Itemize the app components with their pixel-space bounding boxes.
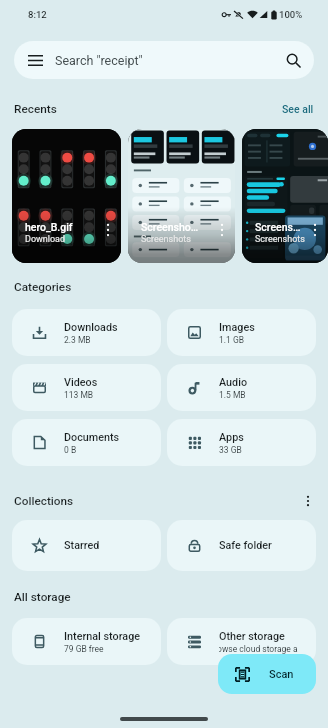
- other: More options: [217, 223, 227, 237]
- button[interactable]: hero_B.gif: [12, 129, 121, 263]
- staticText: Images: [219, 321, 255, 334]
- button[interactable]: Screensho…: [128, 129, 235, 263]
- staticText: Screenshots: [255, 234, 305, 245]
- staticText: All storage: [14, 590, 71, 604]
- button[interactable]: Open navigation menu: [14, 41, 314, 79]
- other: More options: [103, 223, 113, 237]
- staticText: Documents: [64, 431, 120, 444]
- staticText: 33 GB: [219, 445, 242, 455]
- staticText: Apps: [219, 431, 244, 444]
- staticText: Screensho…: [141, 221, 199, 233]
- staticText: Browse cloud storage and more: [219, 644, 298, 654]
- button[interactable]: Audio: [167, 364, 316, 411]
- staticText: Starred: [64, 539, 100, 552]
- button[interactable]: Scan documents: [218, 654, 316, 694]
- staticText: Collections: [14, 494, 74, 508]
- other: More options: [310, 223, 320, 237]
- staticText: Other storage: [219, 630, 285, 643]
- staticText: See all: [282, 103, 314, 115]
- button[interactable]: Images: [167, 309, 316, 356]
- staticText: Internal storage: [64, 630, 141, 643]
- button[interactable]: Other storage: [167, 618, 316, 665]
- staticText: 0 B: [64, 445, 77, 455]
- button[interactable]: Safe folder: [167, 520, 316, 571]
- button[interactable]: More options: [302, 494, 314, 508]
- staticText: Categories: [14, 280, 72, 294]
- staticText: 113 MB: [64, 390, 94, 400]
- staticText: Safe folder: [219, 539, 272, 552]
- staticText: Screenshots: [141, 234, 191, 245]
- button[interactable]: Downloads: [12, 309, 161, 356]
- other: Open navigation menu: [28, 55, 43, 66]
- staticText: Download: [25, 234, 66, 245]
- button[interactable]: Documents: [12, 419, 161, 466]
- staticText: 8:12: [28, 9, 47, 20]
- button[interactable]: Apps: [167, 419, 316, 466]
- other: Scan documents: [235, 667, 250, 682]
- button[interactable]: Videos: [12, 364, 161, 411]
- button[interactable]: See all: [282, 103, 314, 115]
- button[interactable]: Internal storage: [12, 618, 161, 665]
- staticText: 79 GB free: [64, 644, 104, 654]
- button[interactable]: Starred: [12, 520, 161, 571]
- button[interactable]: Screensho…: [242, 129, 328, 263]
- staticText: Scan: [269, 668, 294, 681]
- staticText: Downloads: [64, 321, 118, 334]
- staticText: Videos: [64, 376, 98, 389]
- staticText: 100%: [279, 9, 303, 20]
- staticText: Recents: [14, 102, 57, 116]
- staticText: Search "receipt": [55, 53, 143, 68]
- staticText: 1.1 GB: [219, 335, 244, 345]
- other: Search: [286, 53, 301, 68]
- staticText: Audio: [219, 376, 248, 389]
- staticText: 1.5 MB: [219, 390, 246, 400]
- staticText: hero_B.gif: [25, 221, 73, 233]
- staticText: 2.3 MB: [64, 335, 91, 345]
- staticText: Screensho…: [255, 221, 306, 233]
